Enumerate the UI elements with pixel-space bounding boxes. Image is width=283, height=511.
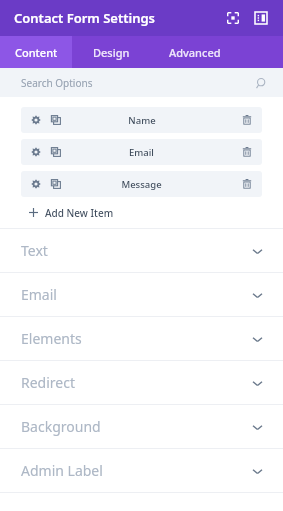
button[interactable]: Settings [28, 144, 44, 160]
staticText: Add New Item [45, 206, 114, 220]
button[interactable]: Duplicate [48, 112, 64, 128]
button[interactable]: Admin Label [0, 449, 283, 492]
button[interactable]: Fullscreen [223, 8, 243, 28]
button[interactable]: Elements [0, 317, 283, 360]
staticText: Message [121, 178, 162, 191]
button[interactable]: Settings [28, 112, 44, 128]
button[interactable]: Layout [251, 8, 271, 28]
button[interactable]: Delete [239, 112, 255, 128]
staticText: Content [15, 45, 58, 60]
button[interactable]: Advanced [150, 36, 240, 68]
staticText: Advanced [169, 45, 221, 60]
button[interactable]: Settings [28, 176, 44, 192]
button[interactable]: Duplicate [48, 144, 64, 160]
button[interactable]: Add New Item [0, 197, 283, 228]
staticText: Name [128, 114, 156, 127]
button[interactable]: Design [72, 36, 150, 68]
button[interactable]: Settings [21, 171, 262, 197]
button[interactable]: Text [0, 229, 283, 272]
staticText: Design [93, 45, 130, 60]
button[interactable]: Settings [21, 139, 262, 165]
button[interactable]: Content [0, 36, 72, 68]
button[interactable]: Settings [21, 107, 262, 133]
staticText: Elements [21, 329, 82, 348]
staticText: Search Options [21, 76, 93, 90]
staticText: Email [129, 146, 154, 159]
staticText: Contact Form Settings [14, 9, 156, 27]
staticText: Text [21, 241, 48, 260]
button[interactable]: Background [0, 405, 283, 448]
staticText: Admin Label [21, 461, 103, 480]
staticText: Email [21, 285, 57, 304]
button[interactable]: Duplicate [48, 176, 64, 192]
staticText: Redirect [21, 373, 75, 392]
button[interactable]: Search Options [0, 68, 283, 97]
staticText: Background [21, 417, 101, 436]
button[interactable]: Redirect [0, 361, 283, 404]
button[interactable]: Delete [239, 144, 255, 160]
button[interactable]: Delete [239, 176, 255, 192]
button[interactable]: Email [0, 273, 283, 316]
